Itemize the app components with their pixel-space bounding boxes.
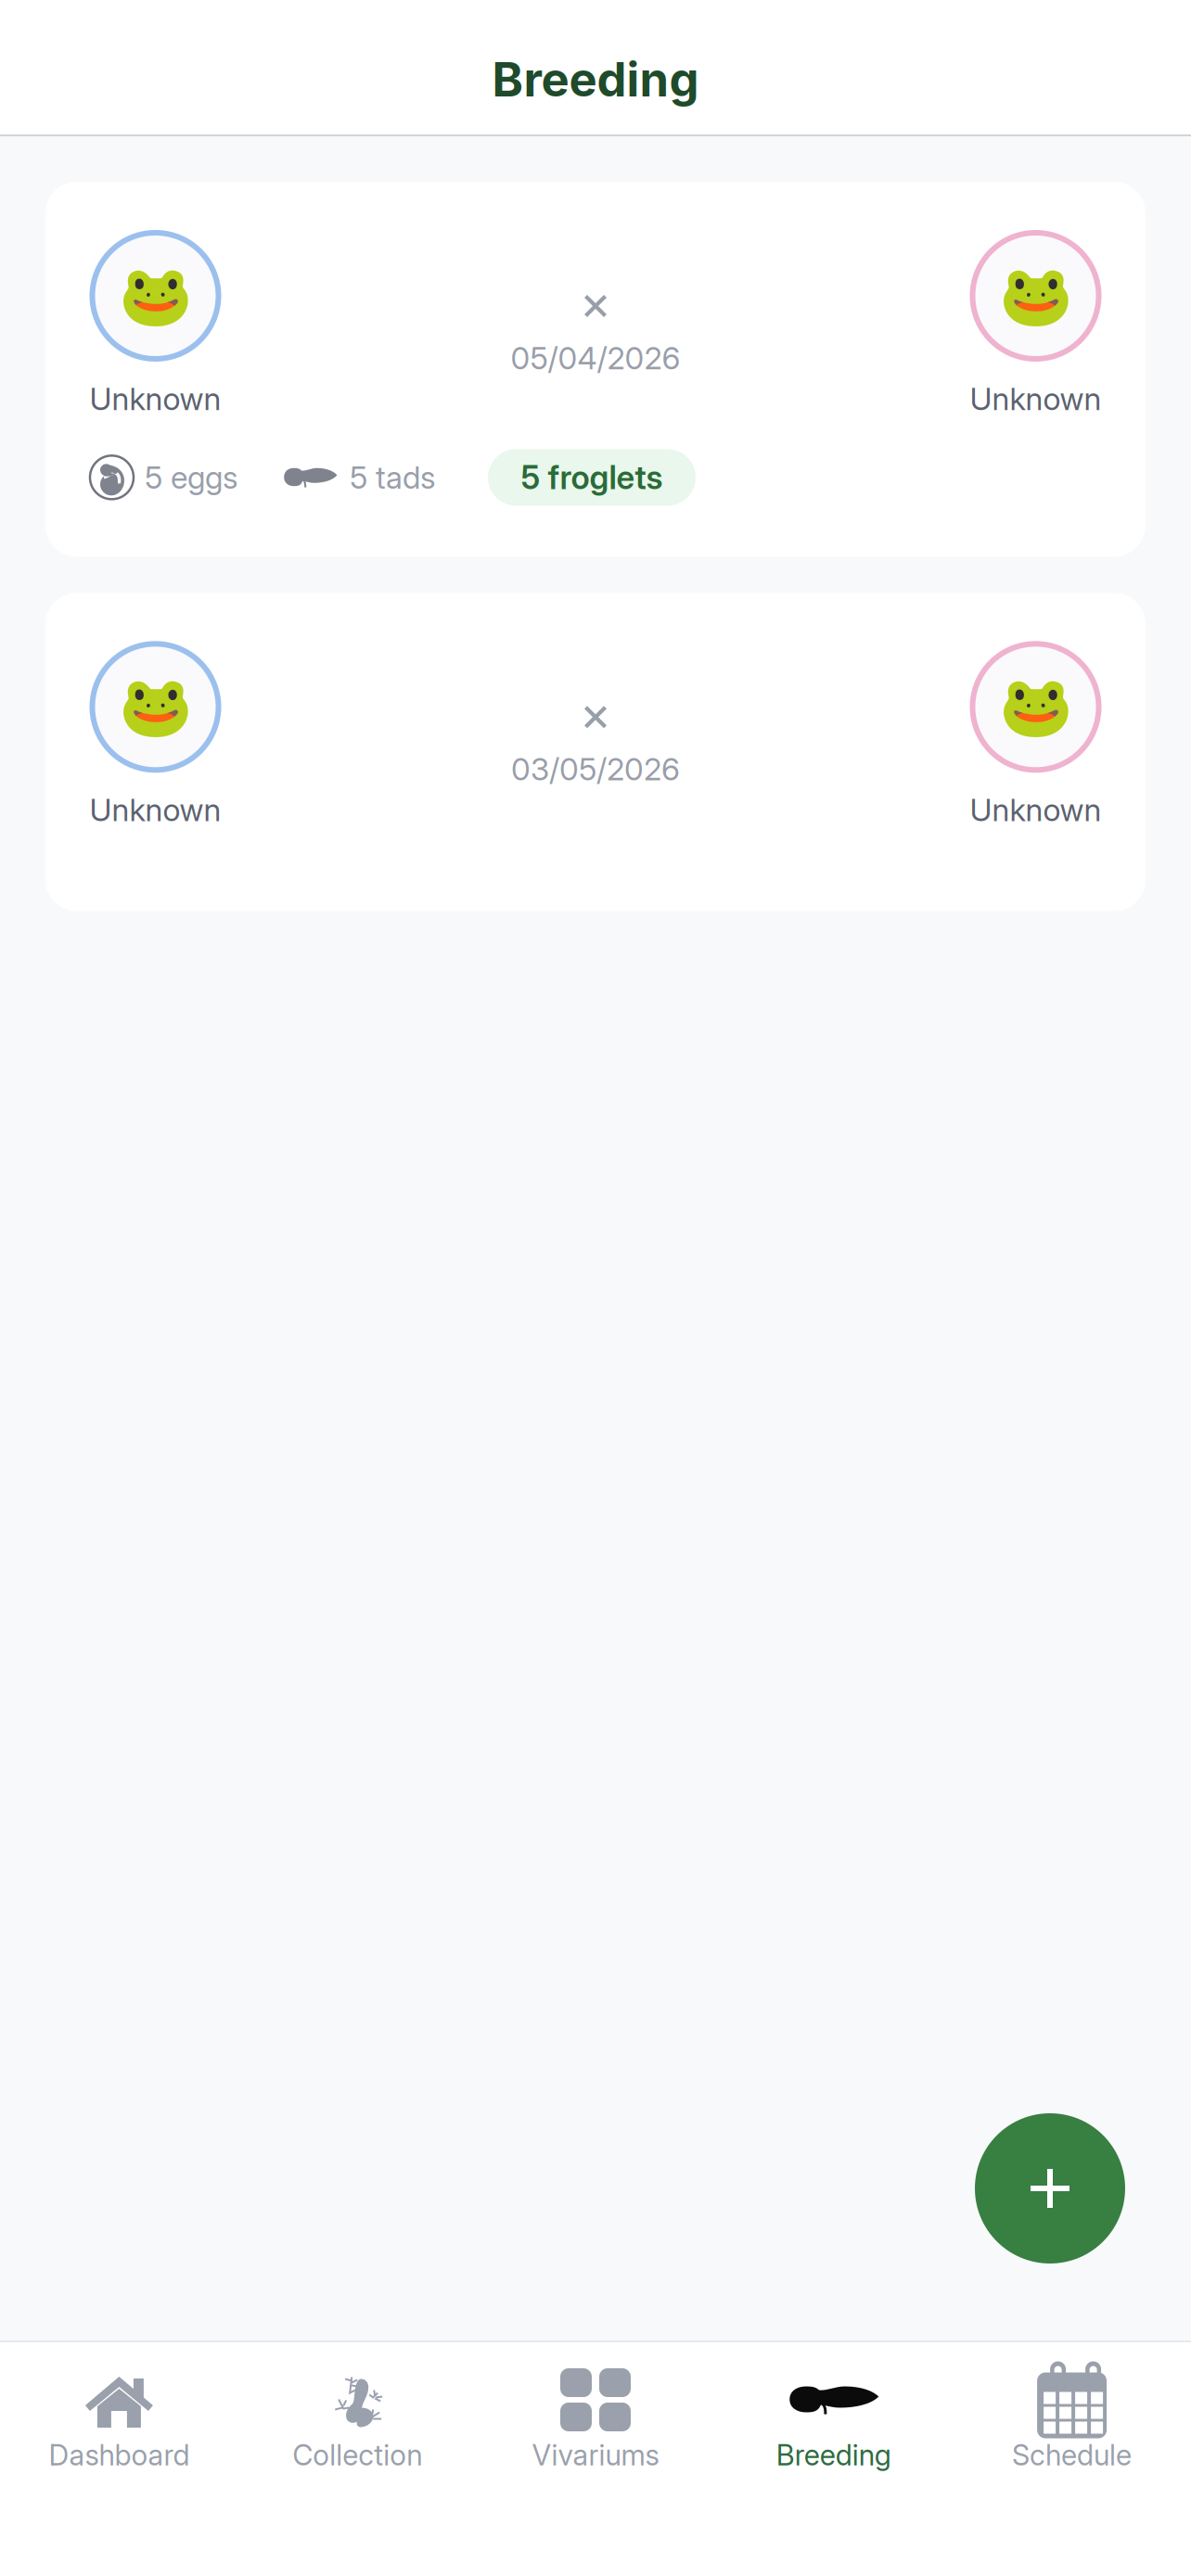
staticText: 03/05/2026 bbox=[511, 750, 680, 788]
staticText: Unknown bbox=[90, 791, 221, 829]
staticText: 🐸 bbox=[118, 673, 192, 741]
staticText: 5 eggs bbox=[145, 459, 238, 496]
button[interactable]: Schedule bbox=[953, 2340, 1191, 2576]
staticText: 5 froglets bbox=[521, 458, 663, 497]
button[interactable]: Breeding bbox=[715, 2340, 953, 2576]
button[interactable]: Add breeding pair bbox=[975, 2113, 1125, 2264]
staticText: Dashboard bbox=[49, 2438, 190, 2472]
button[interactable]: Vivariums bbox=[476, 2340, 715, 2576]
staticText: Vivariums bbox=[532, 2438, 659, 2472]
staticText: Collection bbox=[292, 2438, 422, 2472]
staticText: Schedule bbox=[1012, 2438, 1132, 2472]
staticText: 🐸 bbox=[118, 262, 192, 330]
staticText: Unknown bbox=[90, 380, 221, 418]
button[interactable]: Collection bbox=[238, 2340, 476, 2576]
staticText: Unknown bbox=[970, 791, 1101, 829]
button[interactable]: 🐸 bbox=[45, 593, 1146, 911]
staticText: 🐸 bbox=[999, 673, 1073, 741]
staticText: Breeding bbox=[776, 2438, 891, 2472]
staticText: 5 tads bbox=[350, 459, 436, 496]
staticText: 05/04/2026 bbox=[511, 339, 680, 377]
button[interactable]: 🐸 bbox=[45, 182, 1146, 557]
staticText: Unknown bbox=[970, 380, 1101, 418]
button[interactable]: Dashboard bbox=[0, 2340, 238, 2576]
staticText: Breeding bbox=[492, 51, 699, 108]
staticText: 🐸 bbox=[999, 262, 1073, 330]
